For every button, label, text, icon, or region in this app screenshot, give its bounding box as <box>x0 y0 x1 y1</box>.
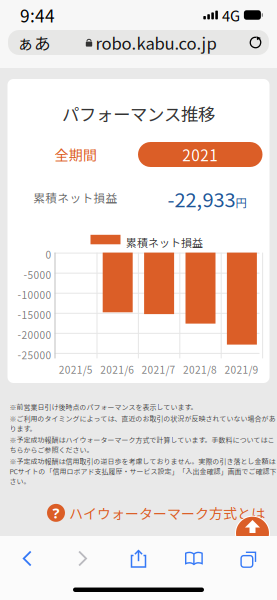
staticText: ぁあ <box>17 30 51 54</box>
staticText: 円 <box>235 194 246 210</box>
staticText: -5000 <box>23 267 51 282</box>
button[interactable]: Share <box>111 542 166 576</box>
staticText: 0 <box>45 247 51 262</box>
button[interactable]: Back to top <box>235 516 270 551</box>
staticText: 2021/5 <box>59 362 93 377</box>
staticText: ※予定成功報酬はハイウォーターマーク方式で計算しています。手数料についてはこちら… <box>9 435 274 455</box>
staticText: 2021 <box>182 143 218 166</box>
button[interactable]: Forward <box>55 542 111 576</box>
button[interactable]: ? <box>47 503 265 523</box>
staticText: -22,933 <box>167 184 235 213</box>
staticText: 9:44 <box>20 2 55 28</box>
staticText: 2021/8 <box>183 362 217 377</box>
staticText: 累積ネット損益 <box>33 189 117 206</box>
staticText: ※前営業日引け後時点のパフォーマンスを表示しています。 <box>9 402 197 412</box>
button[interactable]: Bookmarks <box>166 542 222 576</box>
staticText: 金融商品取引業者登録：関東財務局長（金商）第61号 <box>9 566 178 576</box>
staticText: 4G <box>222 4 240 26</box>
staticText: ※ご利用のタイミングによっては、直近のお取引の状況が反映されていない場合がありま… <box>9 413 275 433</box>
staticText: TOP^ <box>241 534 264 546</box>
button[interactable]: Back <box>0 542 55 576</box>
staticText: ※予定成功報酬は信用取引の逆日歩を考慮しておりません。実際の引き落とし金額はPC… <box>9 456 276 486</box>
staticText: パフォーマンス推移 <box>62 101 215 126</box>
staticText: -15000 <box>17 307 51 322</box>
staticText: -25000 <box>17 347 51 362</box>
staticText: 2021/7 <box>142 362 176 377</box>
staticText: -20000 <box>17 327 51 342</box>
staticText: ? <box>52 503 59 523</box>
staticText: -10000 <box>17 287 51 302</box>
button[interactable]: 2021 <box>138 142 262 167</box>
staticText: 累積ネット損益 <box>126 234 203 250</box>
button[interactable]: 全期間 <box>13 142 138 167</box>
button[interactable]: Tabs <box>222 542 277 576</box>
staticText: 2021/6 <box>100 362 134 377</box>
button[interactable]: Text size options <box>8 30 60 55</box>
staticText: ハイウォーターマーク方式とは <box>69 503 265 523</box>
button[interactable]: Reload page <box>242 30 269 55</box>
staticText: 全期間 <box>55 144 97 165</box>
staticText: auカブコム証券株式会社 <box>9 554 87 564</box>
staticText: 2021/9 <box>224 362 258 377</box>
staticText: robo.kabu.co.jp <box>95 30 216 54</box>
